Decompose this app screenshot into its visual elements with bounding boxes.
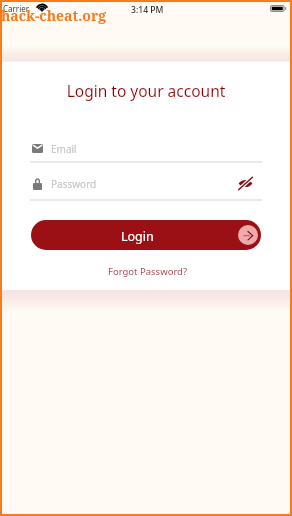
- staticText: Email: [51, 142, 77, 156]
- staticText: Forgot Password?: [108, 265, 188, 278]
- button[interactable]: Forgot Password?: [100, 263, 196, 280]
- button[interactable]: Password: [31, 174, 261, 192]
- staticText: 3:14 PM: [131, 4, 164, 16]
- staticText: Login: [121, 228, 154, 245]
- button[interactable]: Login: [31, 220, 261, 250]
- staticText: Password: [51, 177, 97, 191]
- staticText: hack-cheat.org: [1, 6, 107, 25]
- button[interactable]: Show password: [237, 175, 253, 191]
- button[interactable]: Email: [31, 139, 261, 157]
- staticText: Carrier: [3, 3, 30, 14]
- staticText: Login to your account: [2, 80, 290, 101]
